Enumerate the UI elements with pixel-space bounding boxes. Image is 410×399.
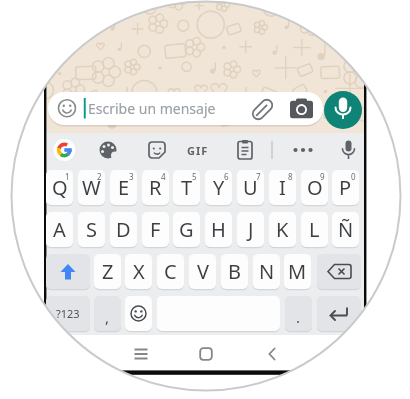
- button[interactable]: S: [78, 212, 105, 247]
- staticText: 6: [224, 171, 229, 182]
- button[interactable]: W: [78, 170, 105, 205]
- staticText: L: [309, 216, 320, 243]
- staticText: V: [197, 258, 209, 285]
- button[interactable]: C: [157, 254, 184, 289]
- staticText: Ñ: [338, 216, 354, 243]
- button[interactable]: R: [142, 170, 169, 205]
- button[interactable]: .: [285, 296, 312, 331]
- button[interactable]: [252, 340, 292, 368]
- staticText: M: [288, 258, 307, 285]
- button[interactable]: P: [332, 170, 359, 205]
- button[interactable]: [317, 254, 361, 289]
- staticText: ,: [105, 307, 110, 327]
- staticText: 4: [161, 171, 166, 182]
- button[interactable]: N: [253, 254, 280, 289]
- button[interactable]: [46, 254, 90, 289]
- button[interactable]: [285, 133, 321, 167]
- staticText: P: [339, 174, 352, 201]
- staticText: C: [164, 258, 177, 285]
- staticText: Z: [102, 258, 114, 285]
- staticText: W: [82, 174, 101, 201]
- button[interactable]: X: [125, 254, 152, 289]
- button[interactable]: D: [110, 212, 137, 247]
- button[interactable]: Ñ: [332, 212, 359, 247]
- staticText: H: [211, 216, 226, 243]
- staticText: E: [118, 174, 130, 201]
- staticText: Y: [213, 174, 225, 201]
- button[interactable]: [324, 91, 362, 129]
- button[interactable]: H: [205, 212, 232, 247]
- button[interactable]: [227, 133, 263, 167]
- button[interactable]: [121, 340, 161, 368]
- button[interactable]: J: [237, 212, 264, 247]
- staticText: Escribe un mensaje: [88, 99, 216, 118]
- button[interactable]: [90, 133, 126, 167]
- staticText: 1: [65, 171, 70, 182]
- staticText: I: [279, 174, 286, 201]
- button[interactable]: Escribe un mensaje: [48, 92, 323, 125]
- staticText: 0: [351, 171, 356, 182]
- button[interactable]: U: [237, 170, 264, 205]
- staticText: 2: [97, 171, 102, 182]
- staticText: X: [133, 258, 145, 285]
- staticText: S: [86, 216, 97, 243]
- button[interactable]: I: [269, 170, 296, 205]
- staticText: 9: [320, 171, 325, 182]
- button[interactable]: ?123: [46, 296, 90, 331]
- staticText: R: [149, 174, 162, 201]
- button[interactable]: [317, 296, 361, 331]
- button[interactable]: [139, 133, 175, 167]
- button[interactable]: [186, 340, 226, 368]
- staticText: F: [150, 216, 161, 243]
- staticText: 8: [288, 171, 293, 182]
- button[interactable]: [180, 133, 216, 167]
- button[interactable]: Q: [46, 170, 73, 205]
- button[interactable]: K: [269, 212, 296, 247]
- staticText: 7: [256, 171, 261, 182]
- button[interactable]: [125, 296, 152, 331]
- button[interactable]: O: [301, 170, 328, 205]
- button[interactable]: E: [110, 170, 137, 205]
- button[interactable]: T: [173, 170, 200, 205]
- staticText: GIF: [187, 143, 209, 158]
- staticText: T: [181, 174, 193, 201]
- button[interactable]: V: [189, 254, 216, 289]
- staticText: 3: [129, 171, 134, 182]
- button[interactable]: A: [46, 212, 73, 247]
- staticText: U: [243, 174, 258, 201]
- staticText: N: [259, 258, 275, 285]
- staticText: 5: [192, 171, 197, 182]
- staticText: A: [53, 216, 66, 243]
- staticText: O: [307, 174, 323, 201]
- staticText: K: [276, 216, 289, 243]
- staticText: Q: [52, 174, 68, 201]
- button[interactable]: F: [142, 212, 169, 247]
- button[interactable]: B: [221, 254, 248, 289]
- button[interactable]: L: [301, 212, 328, 247]
- button[interactable]: [46, 133, 82, 167]
- staticText: ?123: [56, 306, 80, 321]
- staticText: .: [296, 307, 301, 327]
- button[interactable]: M: [284, 254, 311, 289]
- staticText: D: [116, 216, 131, 243]
- button[interactable]: Y: [205, 170, 232, 205]
- staticText: J: [248, 216, 254, 243]
- button[interactable]: Z: [94, 254, 121, 289]
- button[interactable]: [332, 133, 368, 167]
- button[interactable]: G: [173, 212, 200, 247]
- staticText: G: [179, 216, 194, 243]
- button[interactable]: ,: [94, 296, 121, 331]
- staticText: B: [228, 258, 241, 285]
